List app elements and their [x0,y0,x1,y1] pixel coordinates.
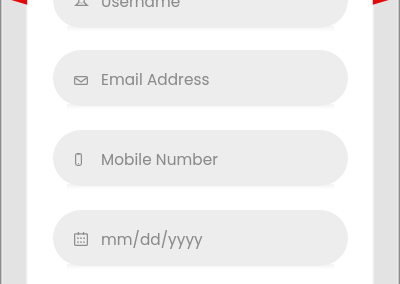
staticText: Username [101,0,181,12]
staticText: Email Address [101,69,210,90]
button[interactable]: Date of birth field [53,210,348,266]
button[interactable]: Username field [53,0,348,28]
staticText: mm/dd/yyyy [101,229,203,250]
button[interactable]: Mobile number field [53,130,348,186]
button[interactable]: Email address field [53,50,348,106]
staticText: Mobile Number [101,149,219,170]
